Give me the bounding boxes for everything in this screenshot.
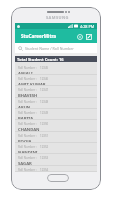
button[interactable]: Roll Number : — [15, 143, 97, 154]
staticText: POOJA — [18, 139, 32, 143]
staticText: Roll Number : — [18, 122, 37, 126]
button[interactable]: Roll Number : — [15, 64, 97, 75]
staticText: Roll Number : — [18, 88, 37, 92]
staticText: StuCareerMitra — [21, 33, 57, 39]
staticText: Roll Number : — [18, 66, 37, 70]
staticText: 12354 — [40, 168, 49, 172]
button[interactable]: Roll Number : — [15, 120, 97, 132]
staticText: Roll Number : — [18, 168, 37, 172]
staticText: Student Name / Roll Number — [25, 46, 74, 51]
staticText: Total Student Count: 16 — [17, 57, 64, 62]
staticText: BHAVESH — [18, 93, 38, 98]
staticText: 12351 — [40, 134, 49, 138]
staticText: 12346 — [40, 77, 49, 81]
staticText: 12350 — [40, 122, 49, 126]
staticText: Roll Number : — [18, 145, 37, 149]
staticText: 12349 — [40, 111, 49, 115]
staticText: BABITA — [18, 116, 34, 120]
staticText: 12353 — [40, 156, 49, 160]
button[interactable]: Info — [75, 32, 84, 41]
staticText: ANJALI — [18, 71, 33, 75]
staticText: Roll Number : — [18, 111, 37, 115]
staticText: 12347 — [40, 88, 49, 92]
staticText: Roll Number : — [18, 156, 37, 160]
staticText: 12348 — [40, 100, 49, 104]
button[interactable]: Roll Number : — [15, 98, 97, 109]
staticText: AMIT KUMAR — [18, 82, 46, 86]
staticText: Roll Number : — [18, 77, 37, 81]
button[interactable]: Edit — [84, 32, 93, 41]
button[interactable]: Roll Number : — [15, 154, 97, 166]
staticText: SAGAR — [18, 161, 32, 166]
staticText: CHANDAN — [18, 127, 40, 132]
staticText: Roll Number : — [18, 134, 37, 138]
button[interactable]: Roll Number : — [15, 166, 97, 172]
button[interactable]: Roll Number : — [15, 132, 97, 143]
button[interactable]: Roll Number : — [15, 75, 97, 86]
button[interactable]: Roll Number : — [15, 86, 97, 98]
staticText: NANDINI — [18, 150, 38, 154]
staticText: SAMSUNG — [46, 15, 69, 20]
staticText: Roll Number : — [18, 100, 37, 104]
staticText: 4:28 PM — [80, 24, 95, 29]
button[interactable]: Student Name / Roll Number — [15, 43, 97, 53]
button[interactable]: Roll Number : — [15, 109, 97, 120]
staticText: 12345 — [40, 66, 49, 70]
staticText: 12352 — [40, 145, 49, 149]
staticText: ARUN — [18, 105, 31, 109]
